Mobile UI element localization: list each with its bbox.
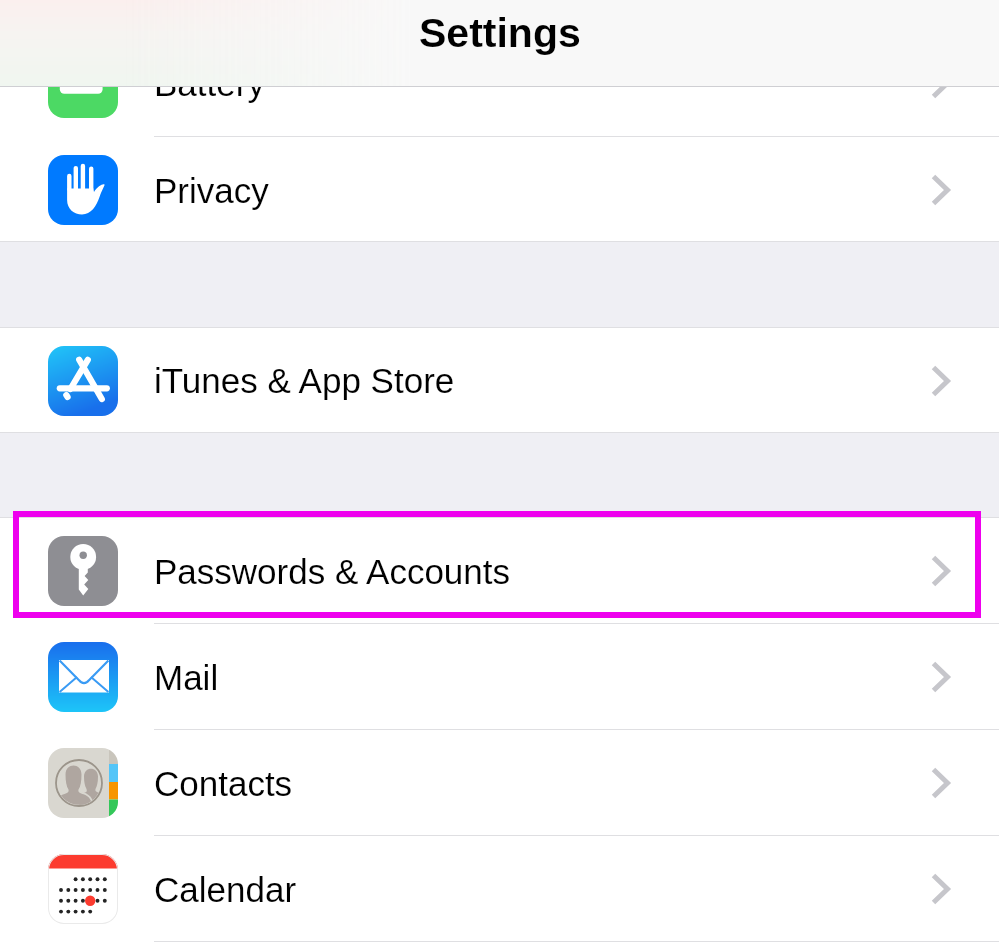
button[interactable]: Calendar (0, 836, 999, 942)
button[interactable]: Mail (0, 624, 999, 730)
button[interactable]: Passwords & Accounts (0, 518, 999, 624)
staticText: Settings (419, 10, 581, 56)
button[interactable]: iTunes & App Store (0, 328, 999, 433)
staticText: Contacts (154, 764, 293, 803)
staticText: Battery (154, 64, 265, 103)
staticText: Calendar (154, 870, 297, 909)
staticText: Mail (154, 658, 219, 697)
staticText: Privacy (154, 171, 269, 210)
staticText: iTunes & App Store (154, 361, 455, 400)
button[interactable]: Contacts (0, 730, 999, 836)
button[interactable]: Privacy (0, 137, 999, 243)
button[interactable]: Battery (0, 29, 999, 137)
staticText: Passwords & Accounts (154, 552, 510, 591)
